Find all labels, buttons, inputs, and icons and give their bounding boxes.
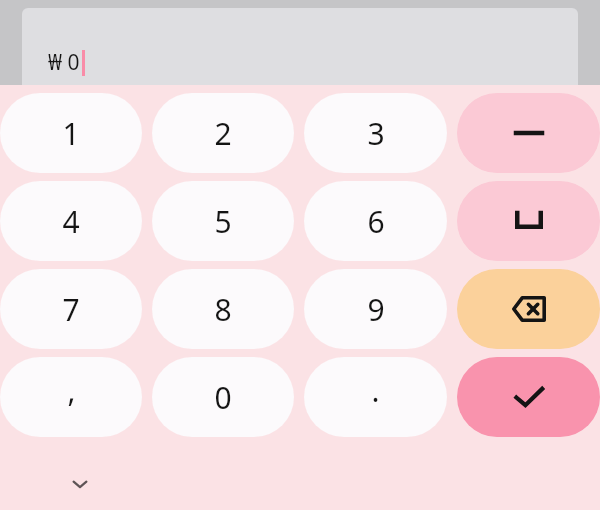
- staticText: 6: [367, 201, 385, 242]
- staticText: ,: [67, 370, 76, 411]
- button[interactable]: .: [304, 357, 447, 437]
- button[interactable]: 0: [152, 357, 294, 437]
- button[interactable]: Backspace: [457, 269, 600, 349]
- staticText: 8: [214, 289, 232, 330]
- staticText: 1: [62, 113, 80, 154]
- staticText: 5: [214, 201, 232, 242]
- staticText: 2: [214, 113, 232, 154]
- button[interactable]: Confirm: [457, 357, 600, 437]
- button[interactable]: 7: [0, 269, 142, 349]
- button[interactable]: Minus: [457, 93, 600, 173]
- button[interactable]: 3: [304, 93, 447, 173]
- button[interactable]: ₩ 0: [22, 8, 578, 85]
- staticText: 3: [367, 113, 385, 154]
- staticText: 0: [214, 377, 232, 418]
- staticText: 4: [62, 201, 80, 242]
- button[interactable]: 2: [152, 93, 294, 173]
- staticText: .: [371, 370, 380, 411]
- button[interactable]: 4: [0, 181, 142, 261]
- button[interactable]: Space: [457, 181, 600, 261]
- button[interactable]: 8: [152, 269, 294, 349]
- staticText: ₩ 0: [48, 48, 80, 77]
- staticText: 9: [367, 289, 385, 330]
- button[interactable]: 6: [304, 181, 447, 261]
- button[interactable]: 9: [304, 269, 447, 349]
- button[interactable]: 1: [0, 93, 142, 173]
- button[interactable]: ,: [0, 357, 142, 437]
- staticText: 7: [62, 289, 80, 330]
- button[interactable]: Hide keypad: [58, 462, 102, 506]
- button[interactable]: 5: [152, 181, 294, 261]
